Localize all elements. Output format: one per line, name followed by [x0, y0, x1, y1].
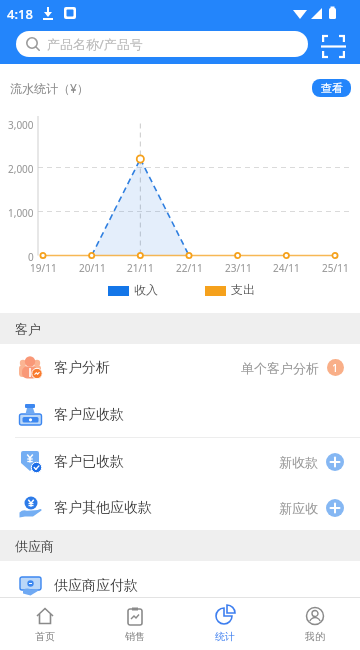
button[interactable]: 产品名称/产品号	[16, 31, 308, 57]
staticText: 销售	[125, 630, 145, 643]
staticText: 单个客户分析	[241, 360, 319, 376]
button[interactable]: 统计	[180, 599, 270, 649]
button[interactable]: 供应商应付款	[0, 562, 360, 609]
staticText: 我的	[305, 630, 325, 643]
staticText: 新应收	[279, 500, 318, 516]
staticText: 0	[28, 250, 34, 264]
staticText: 客户分析	[54, 359, 110, 377]
button[interactable]: 首页	[0, 599, 90, 649]
staticText: 3,000	[8, 118, 34, 132]
staticText: 统计	[215, 630, 235, 643]
staticText: 客户已收款	[54, 453, 124, 471]
button[interactable]: 客户分析	[0, 344, 360, 391]
staticText: 产品名称/产品号	[47, 35, 143, 53]
staticText: 2,000	[8, 162, 34, 176]
staticText: 流水统计（¥）	[10, 80, 89, 96]
button[interactable]	[326, 499, 344, 517]
staticText: 客户其他应收款	[54, 499, 152, 517]
staticText: 22/11	[176, 261, 203, 275]
button[interactable]	[318, 32, 350, 62]
staticText: 25/11	[322, 261, 349, 275]
button[interactable]	[326, 453, 344, 471]
staticText: 4:18	[7, 5, 33, 23]
staticText: 供应商应付款	[54, 577, 138, 595]
staticText: 供应商	[15, 538, 54, 554]
staticText: 1	[332, 360, 339, 375]
button[interactable]: 客户其他应收款	[0, 484, 360, 531]
staticText: 21/11	[127, 261, 154, 275]
staticText: 支出	[231, 282, 255, 297]
staticText: 20/11	[79, 261, 106, 275]
staticText: 新收款	[279, 454, 318, 470]
staticText: 19/11	[30, 261, 57, 275]
staticText: 客户	[15, 321, 41, 337]
staticText: 客户应收款	[54, 406, 124, 424]
staticText: 首页	[35, 630, 55, 643]
button[interactable]: 客户应收款	[0, 391, 360, 438]
button[interactable]: 我的	[270, 599, 360, 649]
staticText: 收入	[134, 282, 158, 297]
button[interactable]: 销售	[90, 599, 180, 649]
staticText: 24/11	[273, 261, 300, 275]
button[interactable]: 查看	[312, 79, 351, 97]
staticText: 23/11	[225, 261, 252, 275]
staticText: 查看	[321, 81, 343, 95]
button[interactable]: 客户已收款	[0, 438, 360, 485]
staticText: 1,000	[8, 206, 34, 220]
